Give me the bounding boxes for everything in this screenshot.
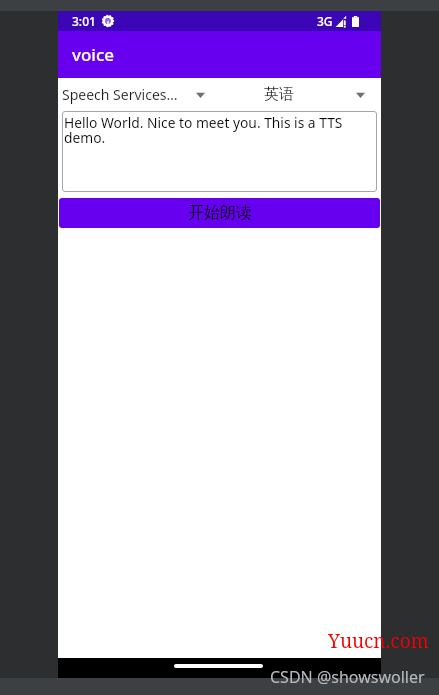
other: Battery	[352, 16, 359, 27]
staticText: CSDN @showswoller	[270, 666, 425, 688]
button[interactable]: 开始朗读	[59, 198, 380, 228]
staticText: 开始朗读	[188, 203, 252, 223]
button[interactable]: Hello World. Nice to meet you. This is a…	[62, 111, 377, 192]
staticText: 3G	[317, 13, 333, 29]
staticText: voice	[72, 43, 115, 66]
staticText: Speech Services…	[62, 85, 178, 104]
staticText: 英语	[264, 85, 294, 104]
other: Mobile signal	[335, 14, 348, 26]
staticText: Hello World. Nice to meet you. This is a…	[64, 113, 375, 147]
button[interactable]: Speech Services…	[58, 78, 219, 111]
staticText: Yuucn.com	[328, 628, 429, 654]
staticText: 3:01	[72, 13, 96, 29]
other: Settings	[102, 15, 114, 27]
button[interactable]: 英语	[219, 78, 381, 111]
